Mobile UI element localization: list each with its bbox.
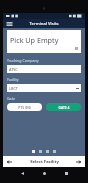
staticText: Trucking Company bbox=[7, 58, 39, 63]
button[interactable]: Pick Up Empty bbox=[7, 30, 81, 53]
button[interactable]: Open navigation menu bbox=[5, 20, 13, 28]
staticText: GATE 4 bbox=[58, 105, 70, 110]
staticText: Pick Up Empty bbox=[10, 35, 59, 45]
staticText: ATSC bbox=[9, 67, 18, 72]
button[interactable]: Back bbox=[19, 170, 25, 176]
button[interactable]: LBCT bbox=[7, 84, 81, 92]
button[interactable]: Recent apps bbox=[63, 170, 69, 176]
button[interactable]: ATSC bbox=[7, 65, 81, 73]
staticText: PTS (IN) bbox=[18, 105, 31, 110]
button[interactable]: GATE 4 bbox=[46, 103, 81, 111]
staticText: Terminal Visits bbox=[29, 21, 59, 27]
staticText: LBCT bbox=[9, 86, 18, 91]
staticText: Gate bbox=[7, 96, 15, 101]
button[interactable]: Previous bbox=[6, 158, 13, 165]
staticText: Select Facility bbox=[30, 159, 59, 165]
button[interactable]: Select Facility bbox=[13, 156, 75, 167]
staticText: Facility bbox=[7, 77, 19, 82]
button[interactable]: Next bbox=[75, 158, 82, 165]
button[interactable]: Home bbox=[41, 170, 47, 176]
button[interactable]: PTS (IN) bbox=[7, 103, 42, 111]
